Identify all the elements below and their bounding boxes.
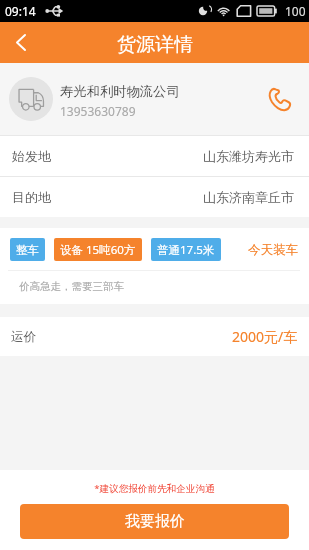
staticText: 始发地 bbox=[12, 148, 51, 164]
staticText: 山东济南章丘市 bbox=[203, 189, 294, 205]
button[interactable]: Back bbox=[0, 22, 41, 63]
staticText: 2000元/车 bbox=[232, 327, 298, 346]
staticText: 山东潍坊寿光市 bbox=[203, 148, 294, 164]
staticText: 13953630789 bbox=[60, 103, 136, 119]
staticText: 寿光和利时物流公司 bbox=[60, 83, 180, 100]
button[interactable]: 我要报价 bbox=[20, 504, 289, 539]
staticText: 设备 15吨60方 bbox=[60, 242, 136, 258]
button[interactable]: 始发地 bbox=[0, 136, 309, 176]
staticText: 价高急走，需要三部车 bbox=[19, 280, 124, 293]
button[interactable]: Call bbox=[263, 76, 309, 122]
staticText: 普通17.5米 bbox=[157, 242, 215, 258]
button[interactable]: 目的地 bbox=[0, 177, 309, 217]
staticText: 目的地 bbox=[12, 189, 51, 205]
staticText: 09:14 bbox=[5, 3, 36, 19]
staticText: *建议您报价前先和企业沟通 bbox=[0, 482, 309, 495]
staticText: 100 bbox=[285, 3, 306, 19]
staticText: 货源详情 bbox=[117, 33, 193, 57]
staticText: 运价 bbox=[11, 329, 36, 345]
staticText: 今天装车 bbox=[248, 242, 298, 258]
button[interactable]: 寿光和利时物流公司 bbox=[0, 63, 309, 135]
staticText: 整车 bbox=[16, 243, 39, 257]
staticText: 我要报价 bbox=[125, 512, 185, 531]
